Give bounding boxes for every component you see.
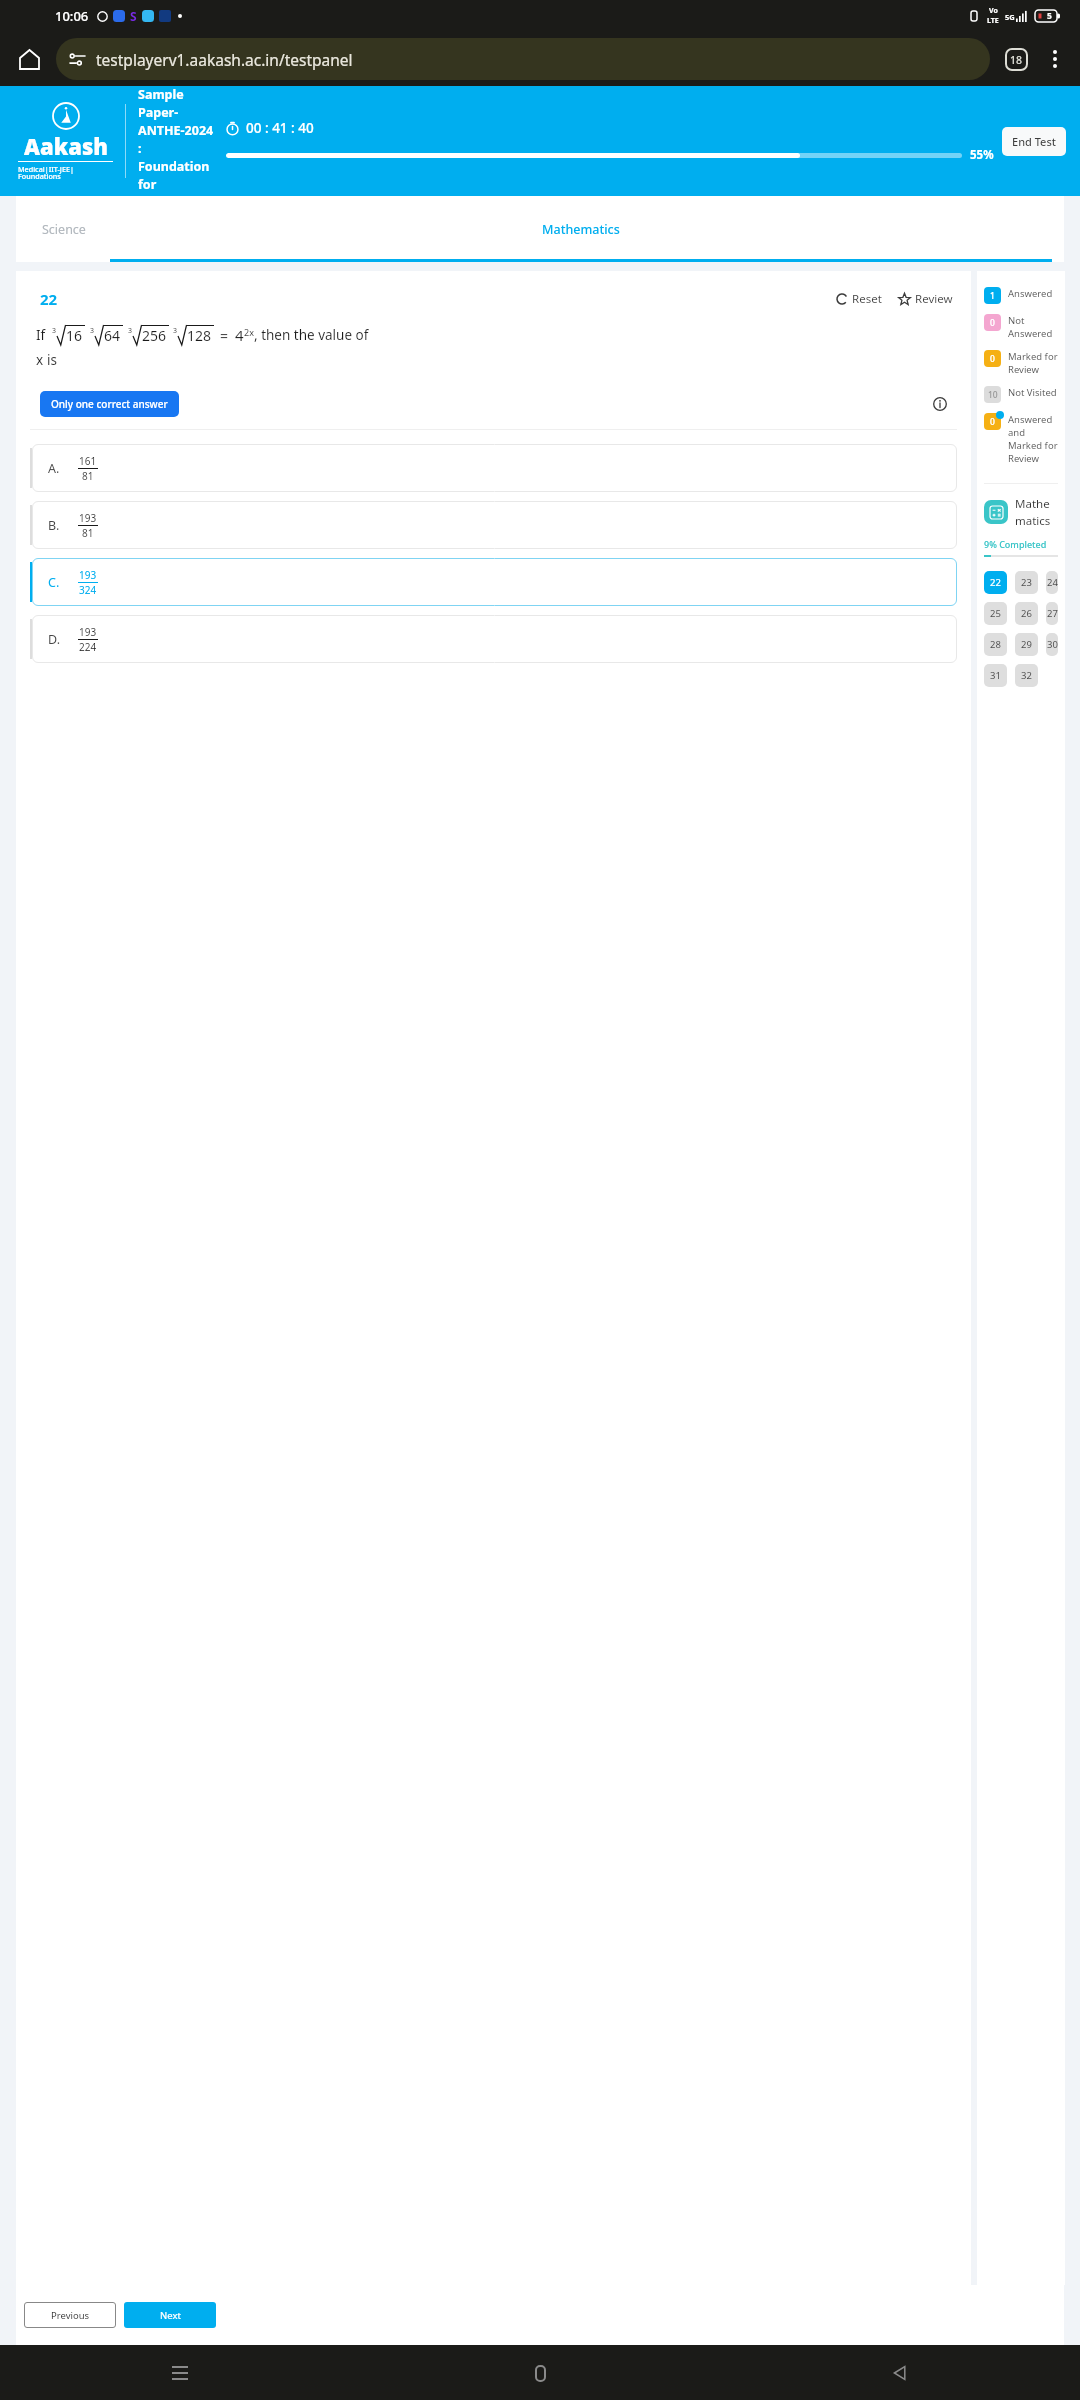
button[interactable]: End Test [1002, 127, 1066, 156]
button[interactable]: Home [6, 36, 52, 82]
staticText: 193 [79, 625, 97, 639]
staticText: 5 [1047, 10, 1052, 22]
staticText: 55% [970, 147, 994, 163]
staticText: A. [48, 460, 60, 477]
button[interactable]: B. [32, 501, 957, 549]
button[interactable]: 29 [1015, 633, 1038, 656]
staticText: 256 [142, 326, 167, 345]
button[interactable]: 30 [1046, 633, 1058, 656]
staticText: B. [48, 517, 60, 534]
staticText: Medical|IIT-JEE|Foundations [18, 164, 113, 181]
staticText: 16 [66, 326, 83, 345]
staticText: 193 [79, 511, 97, 525]
staticText: 24 [1047, 576, 1058, 589]
staticText: 3 [173, 326, 178, 336]
staticText: 29 [1021, 638, 1032, 651]
staticText: Only one correct answer [51, 397, 168, 411]
staticText: 64 [104, 326, 121, 345]
staticText: 22 [40, 289, 58, 309]
staticText: 23 [1021, 576, 1032, 589]
button[interactable]: 25 [984, 602, 1007, 625]
staticText: 224 [79, 640, 97, 654]
staticText: LTE [987, 16, 999, 26]
button[interactable]: 22 [984, 571, 1007, 594]
staticText: 81 [82, 469, 94, 483]
button[interactable]: Only one correct answer [40, 391, 179, 417]
staticText: is [47, 351, 57, 369]
staticText: Review [915, 291, 953, 307]
staticText: 0 [990, 317, 995, 329]
staticText: 10:06 [55, 7, 89, 25]
staticText: Mathematics [1015, 496, 1058, 528]
staticText: Vo [989, 6, 998, 16]
button[interactable]: More options [1036, 40, 1074, 78]
staticText: , then the value of [254, 326, 369, 344]
staticText: D. [48, 631, 60, 648]
staticText: 25 [990, 607, 1001, 620]
button[interactable]: A. [32, 444, 957, 492]
button[interactable]: 24 [1046, 571, 1058, 594]
staticText: 0 [990, 416, 995, 428]
staticText: 128 [187, 326, 212, 345]
staticText: 00 : 41 : 40 [246, 119, 314, 137]
button[interactable]: C. [32, 558, 957, 606]
staticText: S [130, 8, 137, 24]
staticText: 4 [235, 325, 244, 345]
button[interactable]: 28 [984, 633, 1007, 656]
staticText: 9% Completed [984, 538, 1047, 550]
staticText: 18 [1010, 53, 1023, 67]
staticText: 27 [1047, 607, 1058, 620]
button[interactable]: Info [929, 393, 951, 415]
staticText: Not Answered [1008, 314, 1058, 340]
button[interactable]: Home [516, 2349, 564, 2397]
staticText: Answered [1008, 287, 1053, 300]
button[interactable]: Tabs [996, 39, 1036, 79]
button[interactable]: D. [32, 615, 957, 663]
staticText: 0 [990, 353, 995, 365]
staticText: Science [42, 221, 86, 238]
button[interactable]: Next [124, 2302, 216, 2328]
button[interactable]: 31 [984, 664, 1007, 687]
button[interactable]: 32 [1015, 664, 1038, 687]
staticText: Reset [852, 291, 882, 307]
staticText: = [220, 326, 229, 345]
staticText: 31 [990, 669, 1001, 682]
staticText: 3 [52, 326, 57, 336]
staticText: 28 [990, 638, 1001, 651]
staticText: Marked for Review [1008, 350, 1058, 376]
staticText: Aakash [24, 131, 108, 161]
staticText: C. [48, 574, 60, 591]
staticText: 3 [128, 326, 133, 336]
button[interactable]: 27 [1046, 602, 1058, 625]
button[interactable]: Science [30, 196, 98, 262]
button[interactable]: Recent apps [156, 2349, 204, 2397]
staticText: 81 [82, 526, 94, 540]
button[interactable]: Previous [24, 2302, 116, 2328]
button[interactable]: Reset [832, 287, 886, 311]
staticText: Sample Paper- ANTHE-2024 : Foundation fo… [138, 86, 216, 196]
staticText: Not Visited [1008, 386, 1057, 399]
button[interactable]: 26 [1015, 602, 1038, 625]
staticText: Answered and Marked for Review [1008, 413, 1058, 465]
staticText: 193 [79, 568, 97, 582]
staticText: x [36, 351, 44, 369]
staticText: Previous [51, 2309, 90, 2322]
button[interactable]: 23 [1015, 571, 1038, 594]
button[interactable]: Back [876, 2349, 924, 2397]
button[interactable]: Mathematics [98, 196, 1064, 262]
staticText: 324 [79, 583, 97, 597]
staticText: 30 [1047, 638, 1058, 651]
staticText: 5G [1005, 12, 1015, 22]
staticText: 1 [990, 290, 995, 302]
staticText: Next [160, 2309, 181, 2322]
button[interactable]: testplayerv1.aakash.ac.in/testpanel [56, 38, 990, 80]
staticText: 161 [79, 454, 97, 468]
staticText: 22 [990, 576, 1001, 589]
staticText: testplayerv1.aakash.ac.in/testpanel [96, 49, 353, 70]
staticText: 32 [1021, 669, 1032, 682]
staticText: Mathematics [542, 221, 620, 238]
staticText: If [36, 326, 46, 344]
staticText: End Test [1012, 134, 1056, 149]
staticText: 10 [988, 389, 998, 401]
button[interactable]: Review [894, 287, 957, 311]
